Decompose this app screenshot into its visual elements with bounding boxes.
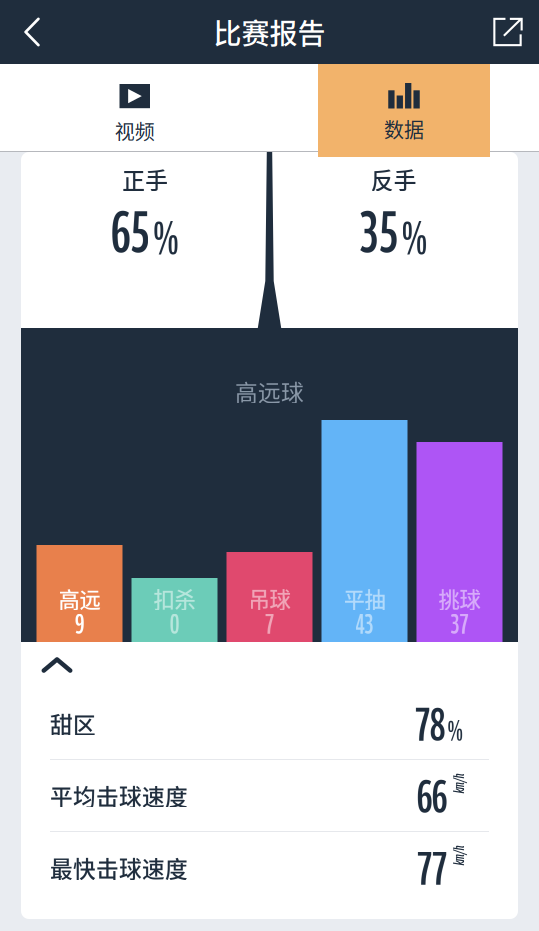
staticText: 9 (75, 607, 84, 640)
staticText: 65 (111, 195, 149, 265)
staticText: 78 (415, 696, 445, 751)
button[interactable]: 视频 (0, 64, 269, 152)
staticText: 挑球 (438, 583, 480, 614)
staticText: 扣杀 (153, 583, 195, 614)
button[interactable]: Collapse (21, 642, 93, 688)
staticText: km/h (448, 846, 468, 864)
staticText: 平均击球速度 (50, 779, 188, 812)
staticText: 高远球 (235, 375, 304, 408)
staticText: 甜区 (50, 707, 96, 740)
staticText: 35 (360, 195, 398, 265)
staticText: 视频 (115, 116, 155, 145)
button[interactable]: Back (0, 0, 64, 64)
staticText: 吊球 (248, 583, 290, 614)
staticText: 77 (417, 840, 447, 895)
staticText: % (152, 209, 179, 265)
staticText: 最快击球速度 (50, 851, 188, 884)
staticText: 平抽 (343, 583, 385, 614)
staticText: 高远 (58, 583, 100, 614)
button[interactable]: 数据 (318, 64, 490, 157)
staticText: 37 (450, 607, 468, 640)
staticText: 7 (265, 607, 274, 640)
staticText: 43 (355, 607, 373, 640)
staticText: km/h (448, 774, 468, 792)
staticText: % (401, 209, 428, 265)
staticText: 正手 (122, 163, 168, 195)
staticText: 反手 (371, 163, 417, 195)
staticText: % (447, 714, 463, 747)
staticText: 66 (417, 768, 447, 823)
staticText: 比赛报告 (213, 12, 325, 52)
staticText: 0 (170, 607, 179, 640)
staticText: 数据 (384, 114, 424, 143)
button[interactable]: Share (477, 0, 539, 64)
